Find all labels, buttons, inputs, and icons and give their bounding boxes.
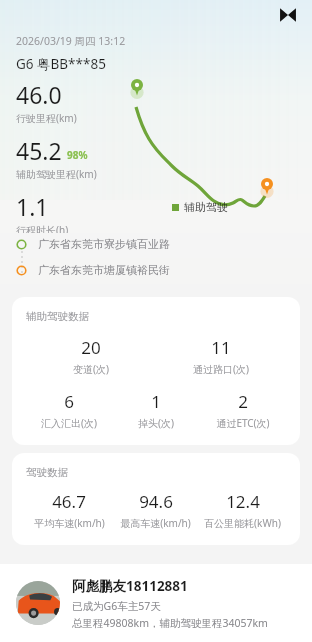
staticText: 平均车速(km/h) [34, 516, 105, 530]
button[interactable]: 阿彪鹏友18112881 [0, 564, 312, 642]
staticText: 辅助驾驶数据 [26, 310, 89, 323]
staticText: 广东省东莞市塘厦镇裕民街 [38, 263, 170, 277]
staticText: 行驶里程(km) [16, 111, 77, 125]
staticText: 12.4 [226, 490, 260, 513]
staticText: 通过ETC(次) [216, 416, 270, 430]
button[interactable]: 广东省东莞市塘厦镇裕民街 [0, 263, 312, 277]
staticText: 2026/03/19 周四 13:12 [16, 34, 126, 48]
staticText: 6 [64, 390, 74, 413]
staticText: 98% [67, 148, 88, 162]
staticText: 46.0 [16, 79, 62, 110]
staticText: 阿彪鹏友18112881 [72, 577, 188, 595]
staticText: 辅助驾驶 [184, 200, 228, 214]
staticText: 94.6 [139, 490, 173, 513]
staticText: 汇入汇出(次) [41, 416, 97, 430]
staticText: 通过路口(次) [193, 362, 249, 376]
staticText: G6 粤BB***85 [16, 55, 106, 73]
staticText: 总里程49808km，辅助驾驶里程34057km [72, 616, 268, 630]
button[interactable]: Share [274, 1, 302, 29]
button[interactable]: 广东省东莞市寮步镇百业路 [0, 237, 312, 251]
staticText: 广东省东莞市寮步镇百业路 [38, 237, 170, 251]
staticText: 驾驶数据 [26, 466, 68, 479]
staticText: 1.1 [16, 191, 49, 222]
staticText: 2 [238, 390, 248, 413]
button[interactable]: 驾驶数据 [12, 453, 300, 545]
staticText: 1 [151, 390, 161, 413]
staticText: 最高车速(km/h) [120, 516, 191, 530]
staticText: 46.7 [52, 490, 86, 513]
staticText: 辅助驾驶里程(km) [16, 167, 97, 181]
staticText: 掉头(次) [138, 416, 174, 430]
staticText: 45.2 [16, 135, 62, 166]
staticText: 11 [211, 336, 231, 359]
staticText: 变道(次) [73, 362, 109, 376]
staticText: 20 [81, 336, 101, 359]
staticText: 已成为G6车主57天 [72, 599, 161, 613]
button[interactable]: 辅助驾驶数据 [12, 297, 300, 445]
staticText: 行程时长(h) [16, 223, 69, 233]
staticText: 百公里能耗(kWh) [204, 516, 281, 530]
